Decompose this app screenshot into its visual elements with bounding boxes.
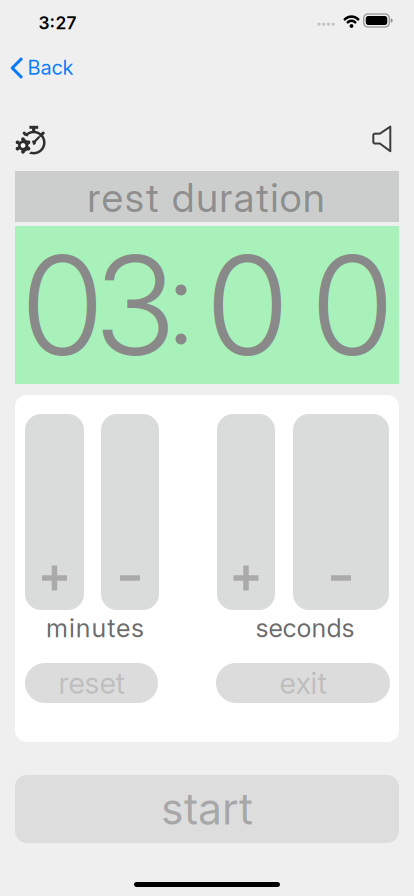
staticText: 0 [20,222,105,388]
button[interactable]: Back [8,52,78,82]
staticText: start [161,783,253,835]
staticText: Back [28,55,74,80]
button[interactable]: Increase minutes [25,414,84,610]
button[interactable]: Sound [371,125,393,153]
staticText: reset [58,665,124,701]
staticText: seconds [255,613,354,643]
staticText: rest duration [87,173,325,222]
button[interactable]: Increase seconds [217,414,275,610]
button[interactable]: start [15,775,399,843]
staticText: 0 [310,222,395,388]
button[interactable]: Decrease minutes [101,414,159,610]
button[interactable]: exit [216,663,390,703]
button[interactable]: reset [25,663,158,703]
staticText: 3:27 [38,12,76,33]
button[interactable]: Decrease seconds [293,414,389,610]
staticText: exit [279,665,326,701]
staticText: 0 [205,222,290,388]
staticText: minutes [46,613,144,643]
button[interactable]: Timer settings [11,120,49,158]
staticText: 3 [93,222,176,388]
